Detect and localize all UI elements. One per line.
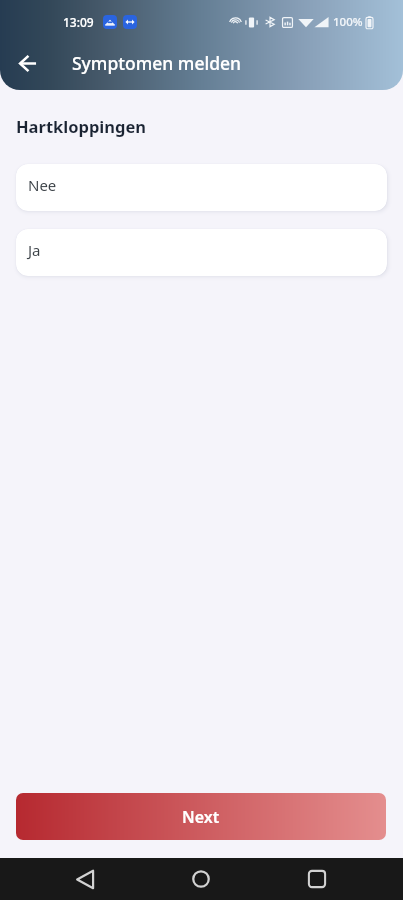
staticText: Symptomen melden <box>72 51 242 75</box>
staticText: Next <box>182 806 220 828</box>
button[interactable]: Home <box>180 858 222 900</box>
button[interactable]: Back <box>64 858 106 900</box>
staticText: Nee <box>28 175 57 195</box>
button[interactable]: Next <box>16 793 386 840</box>
button[interactable]: Ja <box>16 229 387 276</box>
button[interactable]: Nee <box>16 164 387 211</box>
staticText: 13:09 <box>63 14 94 30</box>
button[interactable]: Recent apps <box>296 858 338 900</box>
staticText: Ja <box>28 240 41 260</box>
button[interactable]: Back <box>9 45 45 81</box>
staticText: 100% <box>333 14 363 30</box>
staticText: Hartkloppingen <box>16 115 147 137</box>
